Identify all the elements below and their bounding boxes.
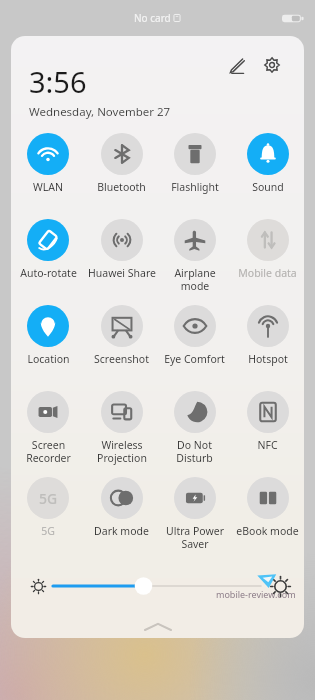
button[interactable]: Screenshot xyxy=(85,302,158,366)
button[interactable]: 5G xyxy=(11,474,85,538)
staticText: Sound xyxy=(252,180,284,194)
button[interactable]: Dark mode xyxy=(85,474,158,538)
staticText: Flashlight xyxy=(171,180,219,194)
button[interactable]: Wireless Projection xyxy=(85,388,158,465)
staticText: Hotspot xyxy=(248,352,288,366)
button[interactable]: Bluetooth xyxy=(85,130,158,194)
button[interactable]: Settings xyxy=(258,51,286,79)
button[interactable]: Auto-rotate xyxy=(11,216,85,280)
button[interactable]: Do Not Disturb xyxy=(158,388,231,465)
button[interactable]: Eye Comfort xyxy=(158,302,231,366)
staticText: WLAN xyxy=(33,180,63,194)
button[interactable]: Airplane mode xyxy=(158,216,231,293)
staticText: mobile-review.com xyxy=(216,588,296,600)
button[interactable]: eBook mode xyxy=(231,474,304,538)
staticText: Wireless Projection xyxy=(97,438,147,465)
button[interactable]: Huawei Share xyxy=(85,216,158,280)
staticText: Bluetooth xyxy=(97,180,146,194)
button[interactable]: Ultra Power Saver xyxy=(158,474,231,551)
button[interactable]: Mobile data xyxy=(231,216,304,280)
staticText: Dark mode xyxy=(94,524,149,538)
button[interactable]: Screen Recorder xyxy=(11,388,85,465)
button[interactable]: Flashlight xyxy=(158,130,231,194)
button[interactable]: Collapse xyxy=(145,622,171,632)
staticText: Mobile data xyxy=(238,266,297,280)
button[interactable]: Brightness xyxy=(53,575,261,597)
staticText: Screenshot xyxy=(94,352,149,366)
button[interactable]: NFC xyxy=(231,388,304,452)
staticText: Screen Recorder xyxy=(26,438,71,465)
staticText: No card xyxy=(134,11,171,25)
staticText: Auto-rotate xyxy=(20,266,77,280)
staticText: eBook mode xyxy=(236,524,299,538)
staticText: 5G xyxy=(39,489,58,508)
staticText: Do Not Disturb xyxy=(176,438,213,465)
staticText: Ultra Power Saver xyxy=(166,524,224,551)
staticText: Airplane mode xyxy=(174,266,216,293)
button[interactable]: Edit xyxy=(222,51,250,79)
button[interactable]: Hotspot xyxy=(231,302,304,366)
staticText: 3:56 xyxy=(29,62,87,101)
staticText: Huawei Share xyxy=(88,266,156,280)
button[interactable]: WLAN xyxy=(11,130,85,194)
staticText: Location xyxy=(27,352,70,366)
button[interactable]: Location xyxy=(11,302,85,366)
staticText: Eye Comfort xyxy=(164,352,225,366)
staticText: NFC xyxy=(257,438,278,452)
staticText: Wednesday, November 27 xyxy=(29,104,171,120)
staticText: 5G xyxy=(41,524,55,538)
button[interactable]: Sound xyxy=(231,130,304,194)
